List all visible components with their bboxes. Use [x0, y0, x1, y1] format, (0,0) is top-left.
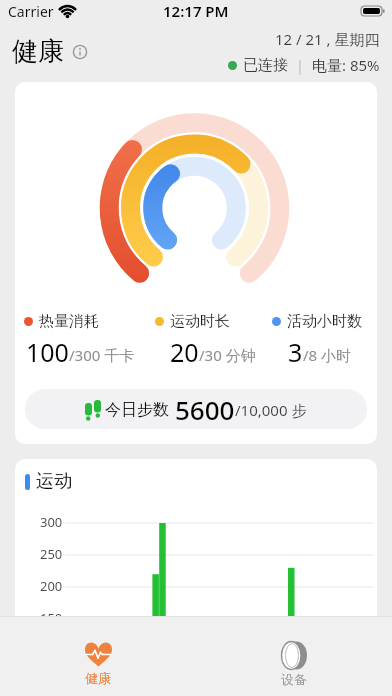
staticText: 健康: [85, 670, 111, 686]
staticText: 电量: 85%: [312, 55, 380, 75]
staticText: 150: [40, 609, 63, 627]
staticText: /10,000 步: [235, 400, 307, 420]
staticText: 3: [288, 335, 303, 369]
staticText: 已连接: [243, 56, 288, 75]
staticText: 250: [40, 545, 63, 563]
button[interactable]: [73, 45, 87, 59]
button[interactable]: 健康: [0, 617, 196, 696]
staticText: /30 分钟: [199, 345, 256, 365]
staticText: /8 小时: [303, 345, 352, 365]
button[interactable]: 设备: [196, 617, 392, 696]
staticText: /300 千卡: [69, 345, 135, 365]
staticText: 200: [40, 577, 63, 595]
staticText: 20: [170, 335, 199, 369]
staticText: |: [288, 55, 312, 75]
staticText: 12 / 21 , 星期四: [275, 29, 380, 49]
staticText: 12:17 PM: [163, 1, 229, 21]
staticText: 100: [26, 335, 69, 369]
staticText: 热量消耗: [39, 312, 99, 331]
staticText: 5600: [175, 392, 235, 427]
staticText: 今日步数: [105, 400, 169, 420]
staticText: 运动: [36, 470, 72, 493]
staticText: 300: [40, 513, 63, 531]
staticText: 设备: [281, 671, 307, 687]
staticText: Carrier: [8, 2, 54, 21]
staticText: 活动小时数: [287, 312, 362, 331]
button[interactable]: 今日步数: [25, 389, 367, 429]
staticText: 运动时长: [170, 312, 230, 331]
staticText: 健康: [12, 35, 64, 68]
